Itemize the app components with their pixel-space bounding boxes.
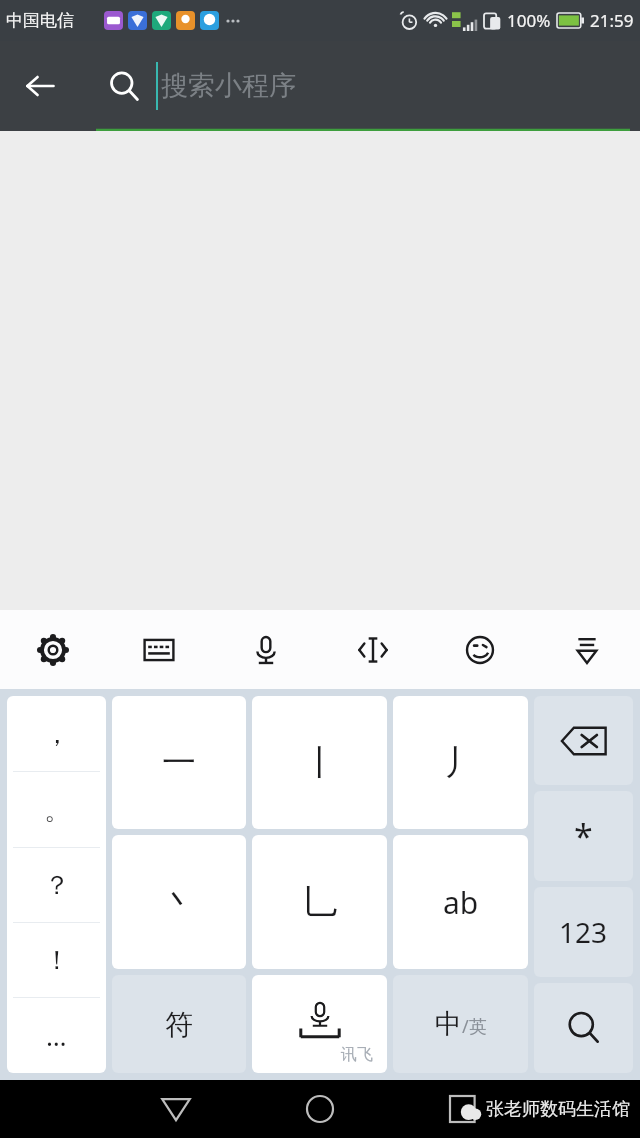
staticText: ab bbox=[443, 882, 479, 923]
button[interactable]: … bbox=[7, 998, 106, 1073]
staticText: * bbox=[574, 813, 593, 859]
button[interactable]: 123 bbox=[534, 887, 633, 977]
staticText: 丶 bbox=[162, 881, 196, 924]
staticText: 丿 bbox=[444, 741, 478, 784]
button[interactable]: 丶 bbox=[112, 835, 246, 969]
button[interactable]: 搜索小程序 bbox=[96, 41, 630, 131]
button[interactable]: Backspace bbox=[534, 696, 633, 785]
button[interactable]: Cursor control bbox=[319, 610, 426, 689]
staticText: 讯飞 bbox=[341, 1045, 373, 1065]
button[interactable]: 张老师数码生活馆 bbox=[450, 1096, 630, 1122]
button[interactable]: 符 bbox=[112, 975, 246, 1073]
staticText: /英 bbox=[462, 1014, 487, 1039]
button[interactable]: Back bbox=[12, 58, 68, 114]
staticText: ？ bbox=[44, 869, 70, 902]
button[interactable]: Keyboard layout bbox=[106, 610, 212, 689]
staticText: 乚 bbox=[303, 881, 337, 924]
staticText: ， bbox=[44, 718, 70, 751]
staticText: 张老师数码生活馆 bbox=[486, 1098, 630, 1121]
button[interactable]: Search bbox=[534, 983, 633, 1073]
button[interactable]: Hide keyboard bbox=[533, 610, 640, 689]
button[interactable]: * bbox=[534, 791, 633, 881]
button[interactable]: ab bbox=[393, 835, 528, 969]
staticText: … bbox=[46, 1018, 67, 1053]
staticText: 符 bbox=[165, 1007, 193, 1042]
button[interactable]: 中 bbox=[393, 975, 528, 1073]
staticText: 。 bbox=[44, 794, 70, 827]
button[interactable]: Emoji bbox=[426, 610, 533, 689]
staticText: ！ bbox=[44, 944, 70, 977]
button[interactable]: 一 bbox=[112, 696, 246, 829]
staticText: 123 bbox=[559, 913, 608, 951]
button[interactable]: Home bbox=[294, 1083, 346, 1135]
staticText: 21:59 bbox=[590, 9, 634, 32]
button[interactable]: 丿 bbox=[393, 696, 528, 829]
staticText: 中 bbox=[435, 1007, 462, 1041]
staticText: 一 bbox=[162, 741, 196, 784]
button[interactable]: Settings bbox=[0, 610, 106, 689]
staticText: 丨 bbox=[303, 741, 337, 784]
button[interactable]: ？ bbox=[7, 848, 106, 923]
staticText: 中国电信 bbox=[6, 10, 74, 31]
staticText: 搜索小程序 bbox=[161, 69, 296, 103]
button[interactable]: 丨 bbox=[252, 696, 387, 829]
button[interactable]: 乚 bbox=[252, 835, 387, 969]
button[interactable]: ！ bbox=[7, 923, 106, 998]
button[interactable]: 。 bbox=[7, 772, 106, 848]
button[interactable]: Voice input bbox=[212, 610, 319, 689]
button[interactable]: ， bbox=[7, 696, 106, 772]
staticText: 100% bbox=[507, 9, 551, 32]
button[interactable]: Back bbox=[150, 1083, 202, 1135]
button[interactable]: 讯飞 bbox=[252, 975, 387, 1073]
